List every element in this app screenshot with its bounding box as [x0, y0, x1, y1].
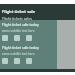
button[interactable] — [14, 58, 20, 64]
staticText: Flight ticket sale — [2, 9, 36, 14]
button[interactable] — [14, 35, 20, 41]
staticText: Flight tickets sales — [2, 16, 32, 20]
staticText: Flight ticket sale today — [2, 45, 39, 50]
button[interactable] — [26, 58, 32, 64]
button[interactable] — [2, 35, 8, 41]
button[interactable] — [2, 58, 8, 64]
staticText: some subtitle text here — [2, 52, 35, 56]
staticText: Flight ticket sale today — [2, 22, 39, 27]
button[interactable] — [26, 35, 32, 41]
staticText: some subtitle text here — [2, 29, 35, 33]
